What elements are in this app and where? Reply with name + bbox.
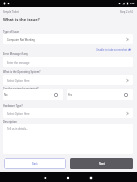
- staticText: Tell us in details...: [7, 127, 28, 130]
- staticText: No: [4, 93, 8, 96]
- button[interactable]: Tell us in details...: [3, 124, 133, 154]
- staticText: Enter the message: [7, 61, 30, 64]
- staticText: What is the Operating System?: [3, 70, 41, 73]
- button[interactable]: Recents: [87, 174, 95, 182]
- staticText: Computer Not Working: [7, 38, 35, 41]
- staticText: Error Message if any: [3, 52, 28, 55]
- button[interactable]: Enter the message: [3, 57, 133, 67]
- button[interactable]: Back: [41, 174, 49, 182]
- staticText: Yes: [68, 93, 72, 96]
- staticText: Next: [99, 162, 105, 165]
- staticText: Description: [3, 120, 17, 123]
- staticText: Can the system be restarted?: [3, 87, 39, 90]
- staticText: Back: [32, 162, 38, 165]
- button[interactable]: Next: [70, 158, 133, 169]
- button[interactable]: Computer Not Working: [3, 34, 133, 44]
- button[interactable]: Unable to take screenshot: [96, 48, 131, 51]
- staticText: Type of Issue: [3, 30, 19, 33]
- staticText: Hardware Type?: [3, 104, 23, 107]
- staticText: What is the issue?: [3, 17, 40, 23]
- button[interactable]: Home: [64, 174, 72, 182]
- button[interactable]: No: [3, 89, 63, 100]
- staticText: Select Option Here: [7, 112, 30, 115]
- button[interactable]: Select Option Here: [3, 108, 133, 118]
- staticText: Unable to take screenshot: [96, 48, 128, 51]
- staticText: Simple Ticket: [3, 10, 19, 13]
- button[interactable]: Select Option Here: [3, 75, 133, 85]
- button[interactable]: Back: [4, 158, 66, 169]
- button[interactable]: Yes: [67, 89, 133, 100]
- staticText: Step 2 of 4: [120, 10, 133, 13]
- staticText: 1:14: [130, 2, 135, 5]
- staticText: Select Option Here: [7, 79, 30, 82]
